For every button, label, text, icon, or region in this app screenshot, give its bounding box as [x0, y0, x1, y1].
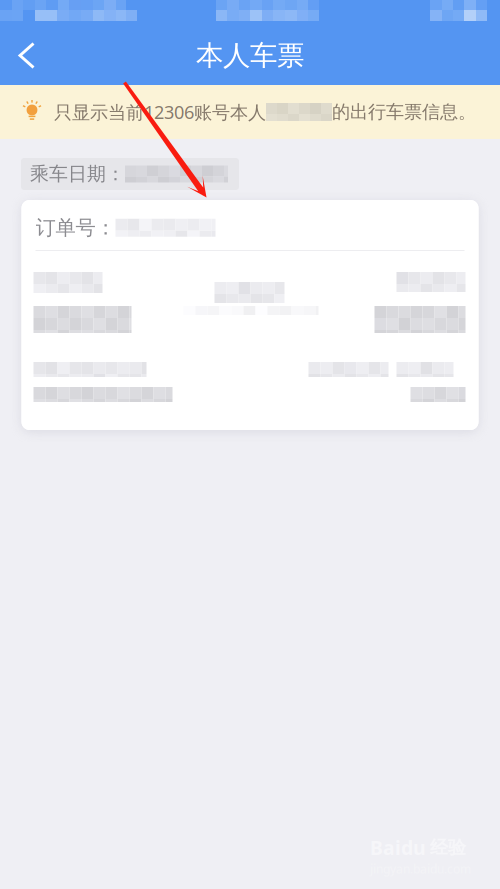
staticText: 的出行车票信息。 — [332, 101, 476, 123]
staticText: 本人车票 — [196, 38, 304, 73]
button[interactable]: 订单号： — [21, 200, 478, 430]
button[interactable]: 返回 — [0, 30, 52, 80]
staticText: 乘车日期： — [30, 162, 125, 186]
staticText: 只显示当前12306账号本人 — [54, 100, 266, 124]
staticText: 订单号： — [35, 215, 115, 240]
